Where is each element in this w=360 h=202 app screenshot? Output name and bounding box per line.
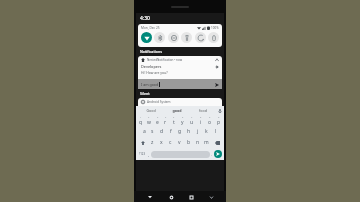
staticText: 6: [182, 116, 184, 119]
button[interactable]: h: [184, 126, 193, 137]
staticText: o: [208, 119, 212, 126]
staticText: 4:30: [140, 15, 150, 22]
staticText: h: [187, 128, 191, 135]
button[interactable]: Auto-rotate: [195, 32, 206, 43]
staticText: q: [139, 119, 143, 126]
button[interactable]: s: [148, 126, 157, 137]
button[interactable]: Wi-Fi: [141, 32, 152, 43]
staticText: 1: [140, 116, 142, 119]
button[interactable]: j: [193, 126, 202, 137]
staticText: x: [160, 139, 163, 146]
button[interactable]: b: [184, 137, 193, 148]
button[interactable]: 4: [161, 115, 169, 126]
button[interactable]: 6: [178, 115, 187, 126]
button[interactable]: .: [210, 149, 214, 159]
staticText: j: [197, 128, 199, 135]
staticText: 4: [165, 116, 167, 119]
button[interactable]: Back: [145, 192, 155, 202]
button[interactable]: Bluetooth: [154, 32, 165, 43]
staticText: b: [187, 139, 191, 146]
button[interactable]: Send: [214, 82, 219, 87]
button[interactable]: ?123: [138, 149, 147, 159]
staticText: y: [181, 119, 184, 126]
button[interactable]: Reply: [214, 64, 219, 69]
staticText: u: [190, 119, 194, 126]
button[interactable]: Recent apps: [186, 192, 196, 202]
staticText: Silent: [140, 91, 150, 96]
staticText: n: [196, 139, 200, 146]
staticText: 9: [209, 116, 211, 119]
button[interactable]: x: [157, 137, 166, 148]
staticText: Notifications: [140, 49, 162, 54]
button[interactable]: Shift: [137, 137, 148, 148]
staticText: l: [215, 128, 217, 135]
staticText: m: [204, 139, 209, 146]
button[interactable]: z: [148, 137, 157, 148]
button[interactable]: Flashlight: [181, 32, 192, 43]
button[interactable]: ,: [147, 149, 151, 159]
staticText: Good: [146, 108, 156, 113]
button[interactable]: Battery saver: [208, 32, 219, 43]
staticText: a: [143, 128, 146, 135]
button[interactable]: f: [166, 126, 175, 137]
staticText: d: [160, 128, 164, 135]
staticText: s: [151, 128, 154, 135]
button[interactable]: 1: [137, 115, 145, 126]
button[interactable]: 3: [153, 115, 161, 126]
button[interactable]: good: [164, 106, 190, 115]
button[interactable]: 2: [145, 115, 153, 126]
staticText: NestedNotification • now: [147, 58, 183, 62]
staticText: 5: [173, 116, 175, 119]
button[interactable]: Android System: [138, 98, 222, 106]
button[interactable]: d: [157, 126, 166, 137]
staticText: Hi! How are you?: [141, 70, 168, 75]
button[interactable]: g: [175, 126, 184, 137]
button[interactable]: Backspace: [211, 137, 223, 148]
staticText: 8: [200, 116, 202, 119]
staticText: p: [217, 119, 221, 126]
button[interactable]: a: [140, 126, 148, 137]
button[interactable]: Voice input: [216, 106, 223, 115]
button[interactable]: m: [202, 137, 211, 148]
staticText: 0: [218, 116, 220, 119]
staticText: Developers: [141, 64, 162, 69]
staticText: v: [178, 139, 181, 146]
button[interactable]: 9: [205, 115, 214, 126]
staticText: good: [172, 108, 182, 113]
staticText: I am good: [141, 82, 159, 87]
staticText: food: [199, 108, 207, 113]
staticText: f: [170, 128, 172, 135]
button[interactable]: 5: [169, 115, 178, 126]
staticText: g: [178, 128, 182, 135]
staticText: t: [173, 119, 175, 126]
button[interactable]: 8: [196, 115, 205, 126]
button[interactable]: Home: [166, 192, 176, 202]
button[interactable]: Send message: [214, 150, 222, 158]
button[interactable]: l: [211, 126, 220, 137]
staticText: z: [151, 139, 154, 146]
staticText: 100%: [211, 26, 219, 30]
staticText: .: [211, 152, 213, 157]
button[interactable]: Good: [137, 106, 164, 115]
button[interactable]: I am good: [138, 79, 222, 89]
staticText: ,: [148, 152, 150, 157]
button[interactable]: n: [193, 137, 202, 148]
staticText: Mon, Dec 25: [141, 26, 160, 30]
staticText: 2: [148, 116, 150, 119]
button[interactable]: v: [175, 137, 184, 148]
button[interactable]: 0: [214, 115, 223, 126]
staticText: k: [205, 128, 208, 135]
staticText: c: [169, 139, 172, 146]
button[interactable]: 7: [187, 115, 196, 126]
staticText: 7: [191, 116, 193, 119]
button[interactable]: Do not disturb: [168, 32, 179, 43]
button[interactable]: k: [202, 126, 211, 137]
button[interactable]: c: [166, 137, 175, 148]
staticText: w: [147, 119, 151, 126]
button[interactable]: Space: [151, 151, 210, 158]
button[interactable]: food: [190, 106, 216, 115]
button[interactable]: NestedNotification • now: [138, 56, 222, 79]
button[interactable]: Hide keyboard: [207, 193, 215, 201]
staticText: Android System: [147, 100, 171, 104]
staticText: r: [164, 119, 167, 126]
